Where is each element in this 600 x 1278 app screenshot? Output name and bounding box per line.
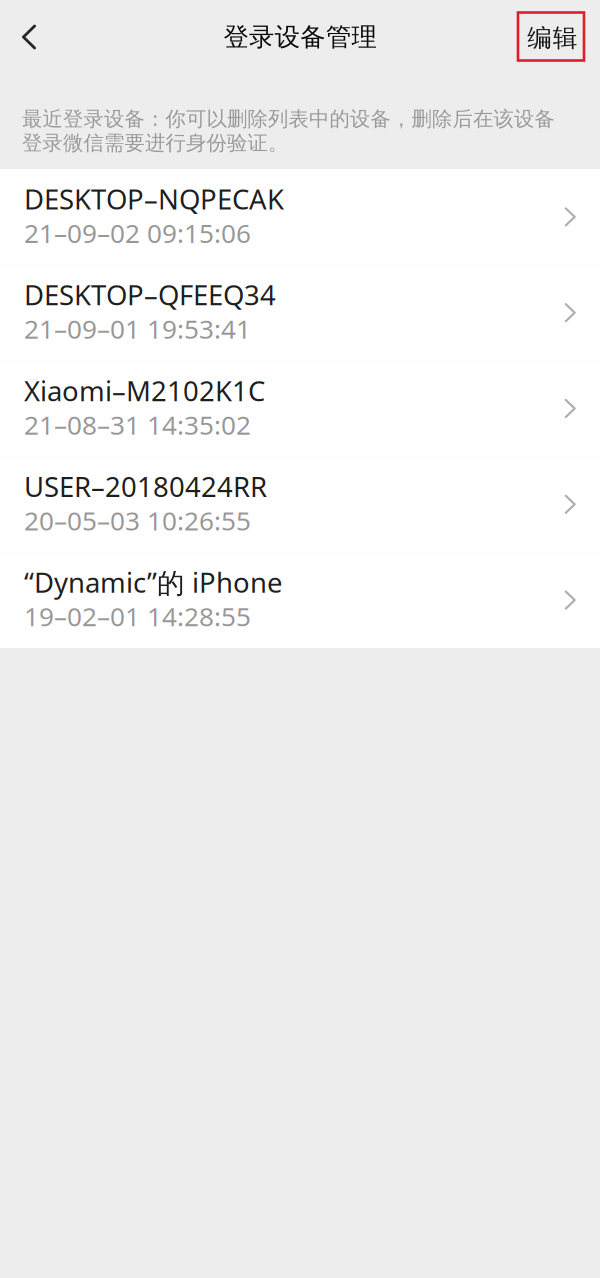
staticText: 21–08–31 14:35:02 <box>24 407 251 442</box>
staticText: 21–09–02 09:15:06 <box>24 215 251 251</box>
staticText: DESKTOP–NQPECAK <box>24 180 284 218</box>
button[interactable]: “Dynamic”的 iPhone <box>0 552 600 648</box>
staticText: DESKTOP–QFEEQ34 <box>24 276 276 313</box>
staticText: USER–20180424RR <box>24 468 267 505</box>
staticText: “Dynamic”的 iPhone <box>24 563 282 601</box>
button[interactable]: USER–20180424RR <box>0 456 600 552</box>
staticText: 登录微信需要进行身份验证。 <box>22 130 288 156</box>
button[interactable]: Xiaomi–M2102K1C <box>0 361 600 456</box>
staticText: Xiaomi–M2102K1C <box>24 372 265 409</box>
button[interactable]: DESKTOP–NQPECAK <box>0 169 600 265</box>
staticText: 19–02–01 14:28:55 <box>24 598 251 634</box>
staticText: 登录设备管理 <box>223 21 376 53</box>
staticText: 21–09–01 19:53:41 <box>24 311 251 346</box>
button[interactable]: DESKTOP–QFEEQ34 <box>0 265 600 361</box>
staticText: 最近登录设备：你可以删除列表中的设备，删除后在该设备 <box>22 106 554 132</box>
button[interactable]: 编辑 <box>518 10 584 60</box>
button[interactable]: 返回 <box>0 6 57 64</box>
staticText: 20–05–03 10:26:55 <box>24 502 251 538</box>
staticText: 编辑 <box>527 22 578 53</box>
